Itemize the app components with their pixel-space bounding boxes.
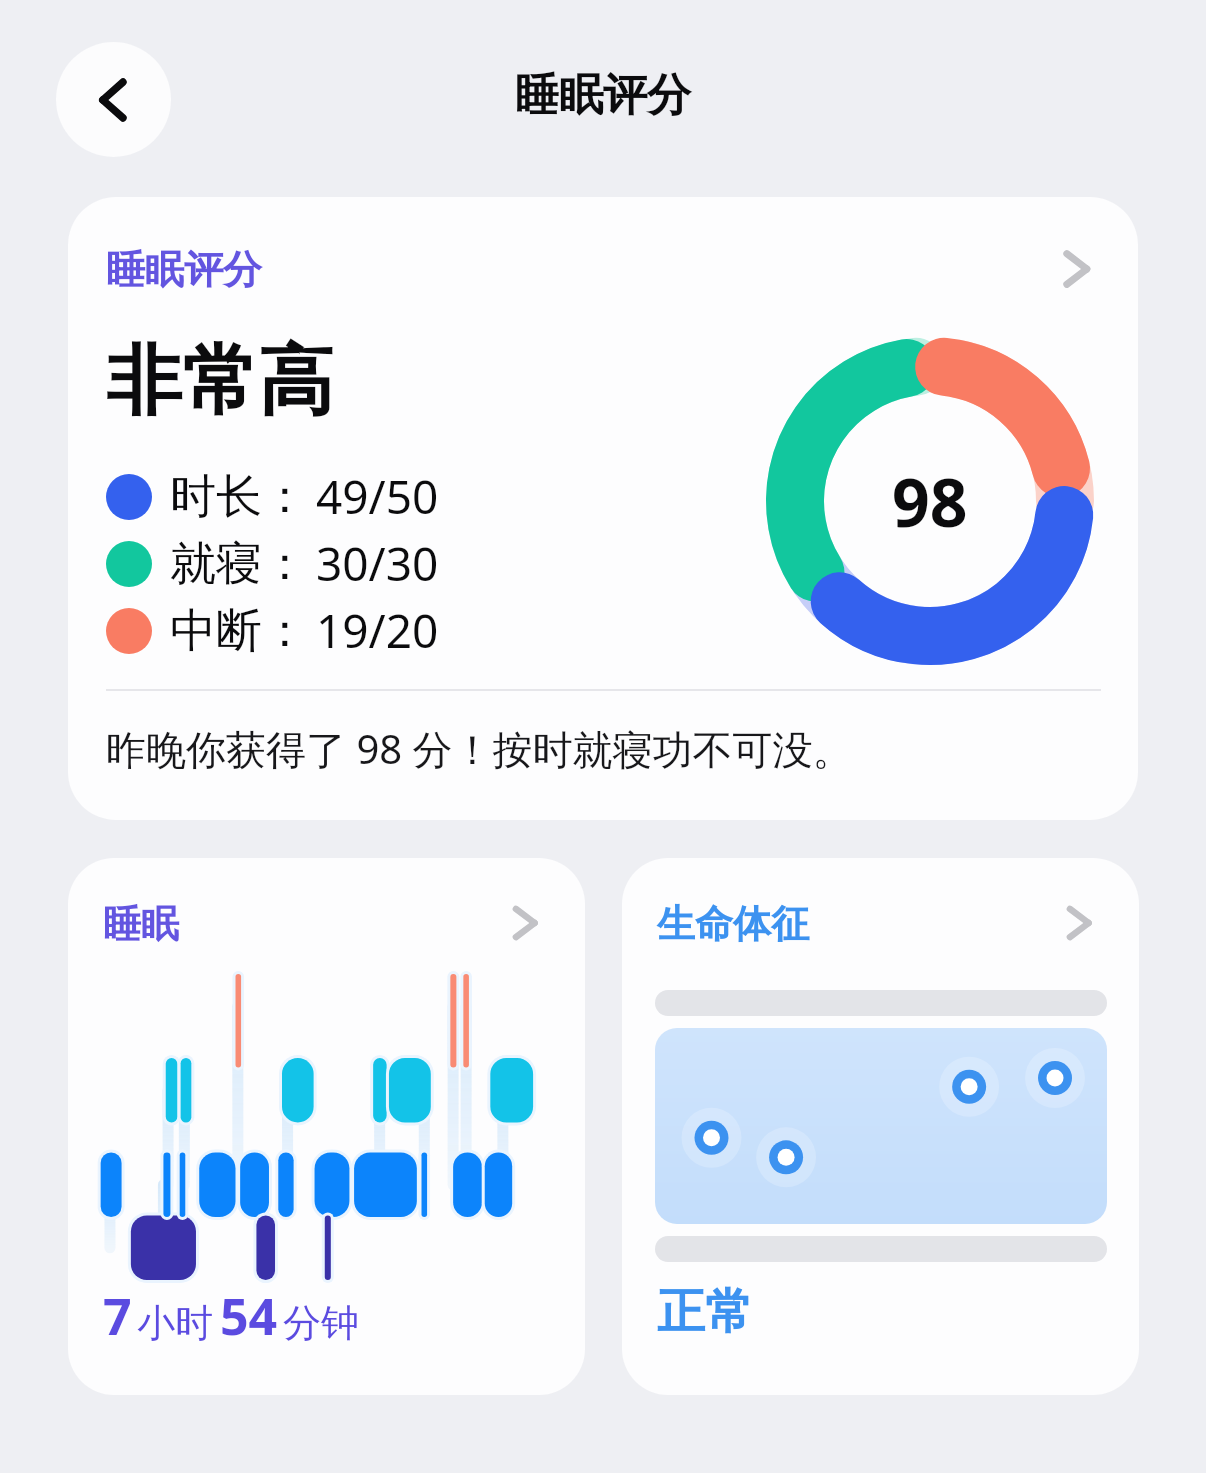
staticText: 非常高: [106, 334, 334, 430]
button[interactable]: 睡眠: [68, 858, 585, 1395]
staticText: 19/20: [316, 599, 439, 662]
staticText: 生命体征: [657, 900, 809, 948]
button[interactable]: 生命体征: [622, 858, 1139, 1395]
staticText: 睡眠评分: [106, 245, 262, 294]
button[interactable]: 睡眠评分: [68, 197, 1138, 820]
staticText: 7: [103, 1282, 132, 1350]
staticText: 正常: [657, 1282, 753, 1342]
staticText: 时长：: [170, 468, 308, 526]
staticText: 分钟: [283, 1299, 359, 1347]
staticText: 49/50: [316, 465, 439, 528]
staticText: 98: [892, 456, 968, 546]
staticText: 昨晚你获得了 98 分！按时就寝功不可没。: [106, 721, 853, 776]
staticText: 小时: [137, 1299, 213, 1347]
staticText: 中断：: [170, 602, 308, 660]
staticText: 54: [220, 1282, 278, 1350]
staticText: 睡眠评分: [515, 68, 691, 123]
button[interactable]: Back: [56, 42, 171, 157]
staticText: 30/30: [316, 532, 439, 595]
staticText: 睡眠: [103, 900, 179, 948]
staticText: 就寝：: [170, 535, 308, 593]
